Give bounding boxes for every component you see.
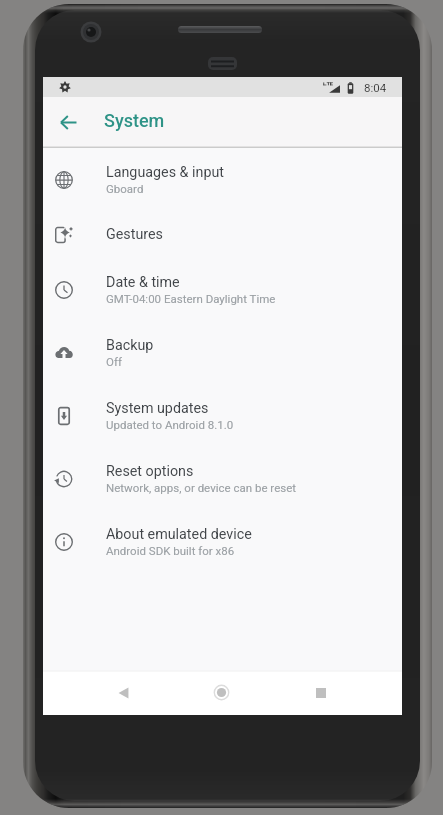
staticText: Languages & input bbox=[106, 164, 224, 181]
button[interactable]: Navigate up bbox=[44, 98, 92, 146]
staticText: Gestures bbox=[106, 226, 163, 243]
staticText: Off bbox=[106, 355, 122, 368]
button[interactable]: Date & time bbox=[43, 258, 402, 321]
staticText: About emulated device bbox=[106, 526, 252, 543]
button[interactable]: Backup bbox=[43, 321, 402, 384]
button[interactable]: Languages & input bbox=[43, 148, 402, 211]
button[interactable]: Recent apps bbox=[303, 671, 339, 714]
button[interactable]: Home bbox=[203, 671, 239, 714]
staticText: Date & time bbox=[106, 274, 180, 291]
staticText: Backup bbox=[106, 337, 154, 354]
staticText: System updates bbox=[106, 400, 209, 417]
staticText: Updated to Android 8.1.0 bbox=[106, 418, 234, 431]
button[interactable]: About emulated device bbox=[43, 510, 402, 573]
staticText: Android SDK built for x86 bbox=[106, 544, 235, 557]
button[interactable]: Reset options bbox=[43, 447, 402, 510]
staticText: GMT-04:00 Eastern Daylight Time bbox=[106, 292, 276, 305]
button[interactable]: Back bbox=[105, 671, 141, 714]
staticText: 8:04 bbox=[364, 81, 387, 94]
staticText: Network, apps, or device can be reset bbox=[106, 481, 297, 494]
staticText: Gboard bbox=[106, 182, 144, 195]
button[interactable]: Gestures bbox=[43, 211, 402, 258]
staticText: Reset options bbox=[106, 463, 194, 480]
button[interactable]: System updates bbox=[43, 384, 402, 447]
staticText: System bbox=[104, 110, 165, 131]
